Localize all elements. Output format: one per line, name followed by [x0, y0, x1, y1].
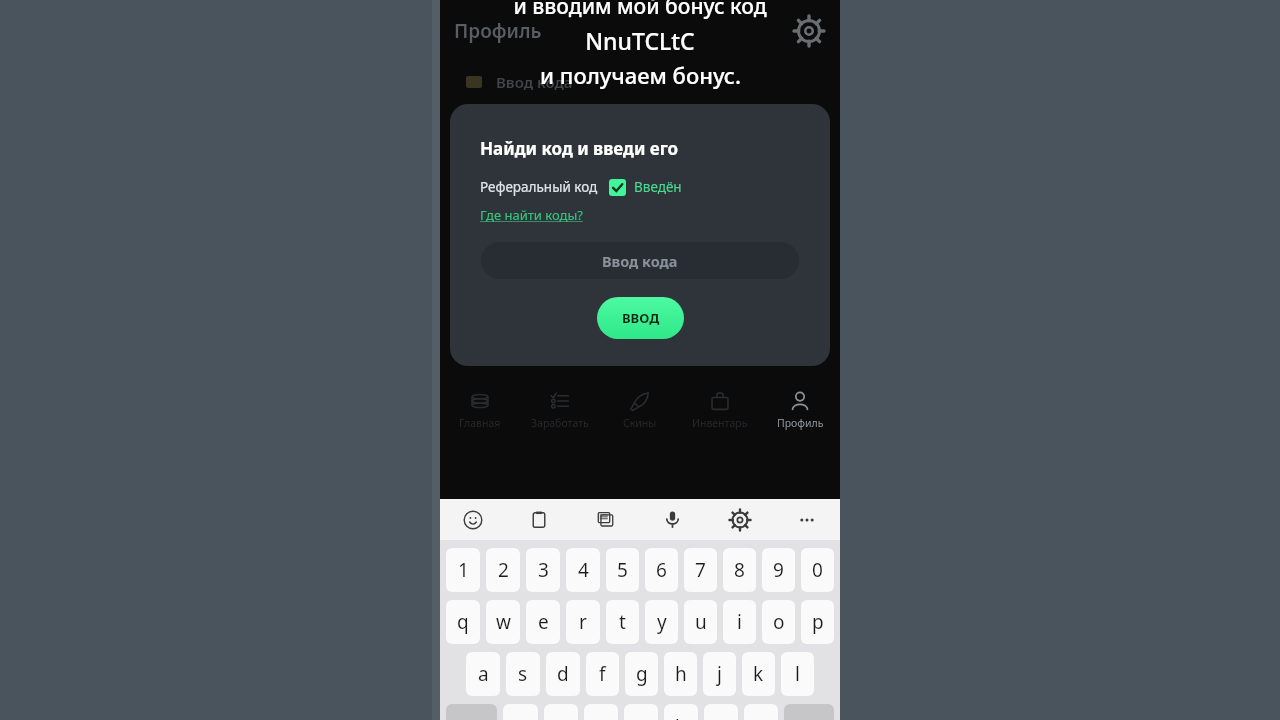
button[interactable]: Settings: [792, 14, 826, 48]
button[interactable]: 9: [762, 548, 795, 592]
button[interactable]: Главная: [440, 384, 520, 436]
button[interactable]: Referral code entered: [609, 179, 626, 196]
button[interactable]: o: [762, 600, 795, 644]
button[interactable]: 2: [486, 548, 520, 592]
button[interactable]: e: [526, 600, 560, 644]
staticText: 6: [656, 557, 667, 583]
staticText: 8: [734, 557, 745, 583]
staticText: 5: [617, 557, 628, 583]
staticText: q: [457, 609, 469, 635]
button[interactable]: b: [664, 704, 698, 720]
staticText: f: [599, 661, 606, 687]
button[interactable]: Ввод кода: [481, 242, 799, 279]
staticText: Реферальный код: [480, 178, 598, 196]
button[interactable]: 0: [801, 548, 834, 592]
staticText: b: [675, 714, 687, 720]
staticText: Главная: [459, 416, 501, 430]
button[interactable]: f: [586, 652, 619, 696]
staticText: 7: [695, 557, 706, 583]
staticText: y: [657, 609, 667, 635]
staticText: Ввод кода: [602, 251, 678, 271]
staticText: ВВОД: [622, 309, 660, 327]
staticText: Профиль: [454, 18, 542, 44]
button[interactable]: c: [584, 704, 618, 720]
staticText: Скины: [623, 416, 657, 430]
staticText: o: [773, 609, 785, 635]
staticText: h: [675, 661, 687, 687]
button[interactable]: q: [446, 600, 480, 644]
button[interactable]: Backspace: [784, 704, 834, 720]
button[interactable]: 7: [684, 548, 717, 592]
button[interactable]: Инвентарь: [680, 384, 760, 436]
button[interactable]: z: [503, 704, 538, 720]
staticText: 2: [498, 557, 509, 583]
staticText: 4: [578, 557, 589, 583]
button[interactable]: Профиль: [760, 384, 840, 436]
button[interactable]: Keyboard settings: [706, 499, 773, 540]
staticText: Введён: [634, 178, 682, 196]
button[interactable]: 3: [526, 548, 560, 592]
staticText: 1: [458, 557, 469, 583]
button[interactable]: s: [506, 652, 540, 696]
staticText: r: [579, 609, 587, 635]
staticText: Найди код и введи его: [480, 137, 679, 160]
button[interactable]: a: [466, 652, 500, 696]
button[interactable]: Скины: [600, 384, 680, 436]
button[interactable]: g: [625, 652, 658, 696]
button[interactable]: r: [566, 600, 600, 644]
staticText: e: [538, 609, 549, 635]
button[interactable]: Voice input: [639, 499, 706, 540]
staticText: Где найти коды?: [480, 206, 583, 224]
button[interactable]: 1: [446, 548, 480, 592]
staticText: s: [518, 661, 528, 687]
button[interactable]: p: [801, 600, 834, 644]
staticText: Профиль: [777, 416, 824, 430]
staticText: 9: [773, 557, 784, 583]
button[interactable]: n: [704, 704, 738, 720]
button[interactable]: j: [703, 652, 736, 696]
button[interactable]: Stickers: [572, 499, 639, 540]
staticText: i: [737, 609, 742, 635]
button[interactable]: u: [684, 600, 717, 644]
staticText: j: [717, 661, 722, 687]
staticText: a: [478, 661, 489, 687]
staticText: l: [795, 661, 800, 687]
button[interactable]: 5: [606, 548, 639, 592]
button[interactable]: k: [742, 652, 775, 696]
staticText: 0: [812, 557, 823, 583]
button[interactable]: l: [781, 652, 814, 696]
button[interactable]: Где найти коды?: [480, 206, 583, 224]
button[interactable]: 6: [645, 548, 678, 592]
button[interactable]: x: [544, 704, 578, 720]
button[interactable]: Заработать: [520, 384, 600, 436]
button[interactable]: Clipboard: [506, 499, 572, 540]
button[interactable]: v: [624, 704, 658, 720]
button[interactable]: More options: [773, 499, 840, 540]
button[interactable]: ВВОД: [597, 297, 684, 339]
button[interactable]: 4: [566, 548, 600, 592]
button[interactable]: w: [486, 600, 520, 644]
button[interactable]: y: [645, 600, 678, 644]
button[interactable]: Shift: [446, 704, 497, 720]
staticText: и вводим мой бонус код: [513, 0, 767, 21]
button[interactable]: d: [546, 652, 580, 696]
button[interactable]: t: [606, 600, 639, 644]
staticText: Ввод кода: [496, 72, 573, 92]
staticText: 3: [538, 557, 549, 583]
staticText: p: [812, 609, 824, 635]
staticText: NnuTCLtC: [585, 25, 695, 56]
button[interactable]: 8: [723, 548, 756, 592]
button[interactable]: h: [664, 652, 697, 696]
staticText: Инвентарь: [692, 416, 748, 430]
button[interactable]: Emoji: [440, 499, 506, 540]
staticText: Заработать: [531, 416, 589, 430]
button[interactable]: i: [723, 600, 756, 644]
button[interactable]: m: [744, 704, 778, 720]
staticText: и получаем бонус.: [540, 60, 741, 90]
